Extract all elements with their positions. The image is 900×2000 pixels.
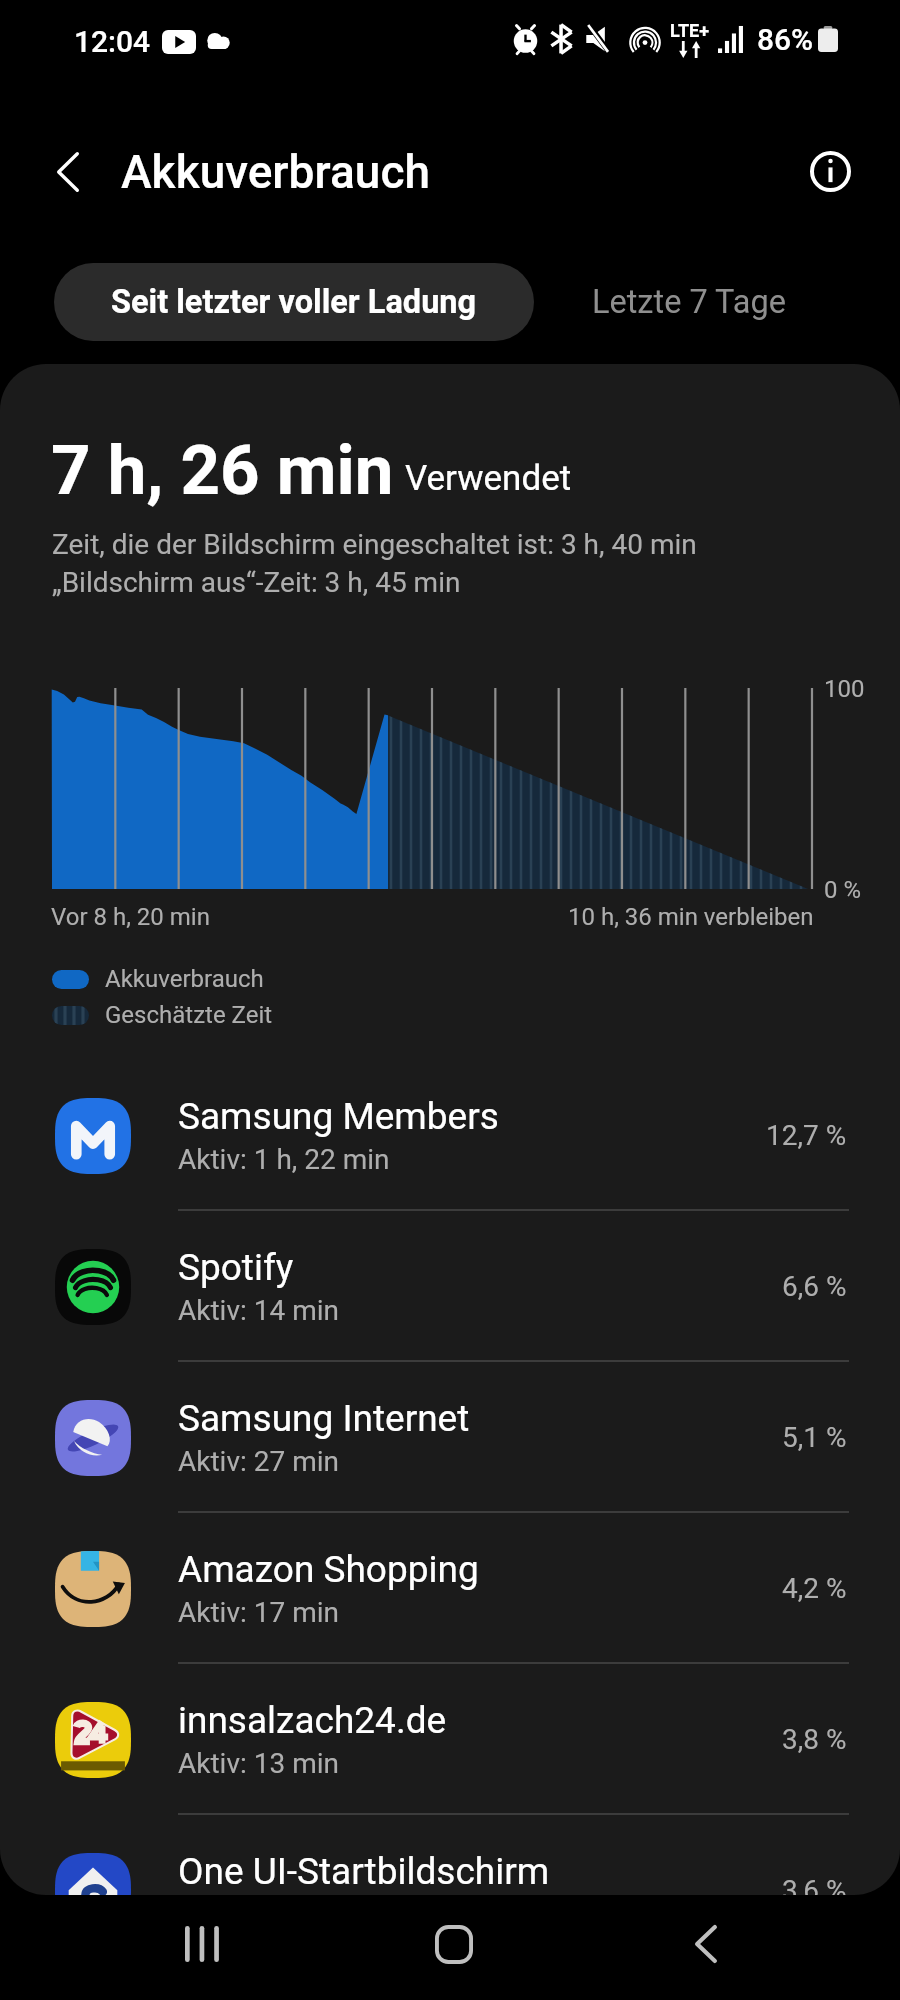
button[interactable]: Letzte Apps bbox=[142, 1888, 262, 2000]
staticText: Aktiv: 17 min bbox=[178, 1596, 339, 1629]
button[interactable]: Zurück bbox=[646, 1888, 766, 2000]
staticText: 100 bbox=[824, 675, 865, 703]
staticText: 7 h, 26 min bbox=[51, 430, 394, 511]
button[interactable]: One UI-Startbildschirm bbox=[0, 1815, 900, 1895]
button[interactable]: Samsung Internet bbox=[0, 1362, 900, 1513]
staticText: One UI-Startbildschirm bbox=[178, 1850, 550, 1893]
staticText: Seit letzter voller Ladung bbox=[111, 283, 477, 321]
staticText: Zeit, die der Bildschirm eingeschaltet i… bbox=[52, 528, 697, 561]
button[interactable]: Spotify bbox=[0, 1211, 900, 1362]
staticText: Samsung Members bbox=[178, 1095, 499, 1138]
staticText: 0 % bbox=[824, 876, 862, 904]
staticText: Samsung Internet bbox=[178, 1397, 470, 1440]
staticText: LTE+ bbox=[670, 20, 710, 41]
button[interactable]: Samsung Members bbox=[0, 1060, 900, 1211]
staticText: Vor 8 h, 20 min bbox=[51, 903, 210, 931]
staticText: 10 h, 36 min verbleiben bbox=[568, 903, 814, 931]
button[interactable]: Seit letzter voller Ladung bbox=[54, 263, 534, 341]
staticText: Amazon Shopping bbox=[178, 1548, 479, 1591]
staticText: Letzte 7 Tage bbox=[592, 283, 786, 321]
staticText: 4,2 % bbox=[782, 1572, 847, 1605]
button[interactable]: Amazon Shopping bbox=[0, 1513, 900, 1664]
staticText: 12:04 bbox=[74, 24, 151, 59]
staticText: Geschätzte Zeit bbox=[105, 1001, 273, 1029]
button[interactable]: Startbildschirm bbox=[394, 1888, 514, 2000]
staticText: Verwendet bbox=[405, 458, 572, 499]
staticText: 3,8 % bbox=[782, 1723, 847, 1756]
staticText: Spotify bbox=[178, 1246, 294, 1289]
staticText: 5,1 % bbox=[782, 1421, 847, 1454]
button[interactable]: Info bbox=[780, 121, 880, 221]
staticText: Aktiv: 14 min bbox=[178, 1294, 339, 1327]
staticText: Aktiv: 27 min bbox=[178, 1445, 339, 1478]
staticText: Akkuverbrauch bbox=[121, 145, 431, 199]
staticText: innsalzach24.de bbox=[178, 1699, 447, 1742]
staticText: 3,6 % bbox=[782, 1874, 847, 1895]
staticText: 12,7 % bbox=[766, 1119, 847, 1152]
button[interactable]: Zurück bbox=[18, 122, 118, 222]
staticText: Akkuverbrauch bbox=[105, 965, 264, 993]
button[interactable]: Letzte 7 Tage bbox=[544, 263, 834, 341]
staticText: „Bildschirm aus“-Zeit: 3 h, 45 min bbox=[52, 566, 461, 599]
button[interactable]: innsalzach24.de bbox=[0, 1664, 900, 1815]
staticText: 6,6 % bbox=[782, 1270, 847, 1303]
staticText: 86% bbox=[757, 22, 814, 57]
staticText: Aktiv: 13 min bbox=[178, 1747, 339, 1780]
staticText: Aktiv: 1 h, 22 min bbox=[178, 1143, 390, 1176]
